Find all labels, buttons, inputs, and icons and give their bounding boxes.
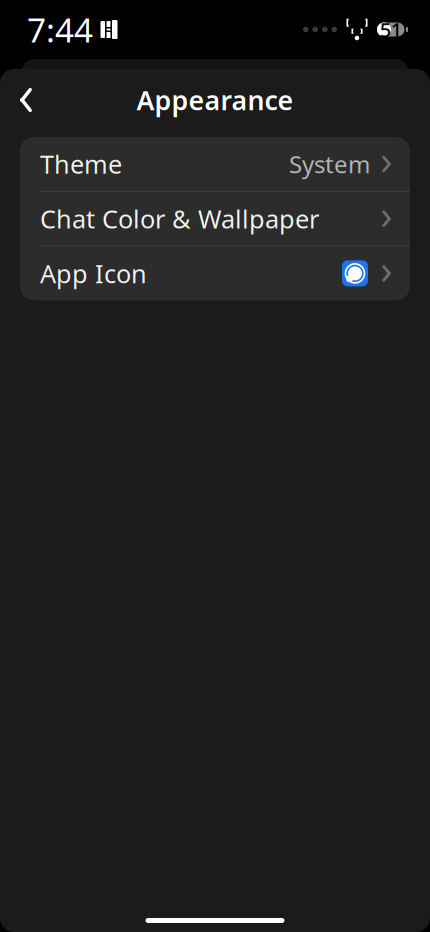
staticText: 51 (380, 16, 402, 43)
button[interactable]: Theme (20, 137, 410, 191)
button[interactable]: App Icon (20, 246, 410, 300)
staticText: System (289, 148, 370, 180)
staticText: App Icon (40, 257, 147, 290)
staticText: Chat Color & Wallpaper (40, 202, 319, 235)
staticText: 7:44 (27, 7, 93, 52)
staticText: Theme (40, 147, 122, 181)
button[interactable]: Chat Color & Wallpaper (20, 192, 410, 246)
staticText: Appearance (136, 82, 293, 118)
button[interactable]: Back (3, 77, 49, 123)
